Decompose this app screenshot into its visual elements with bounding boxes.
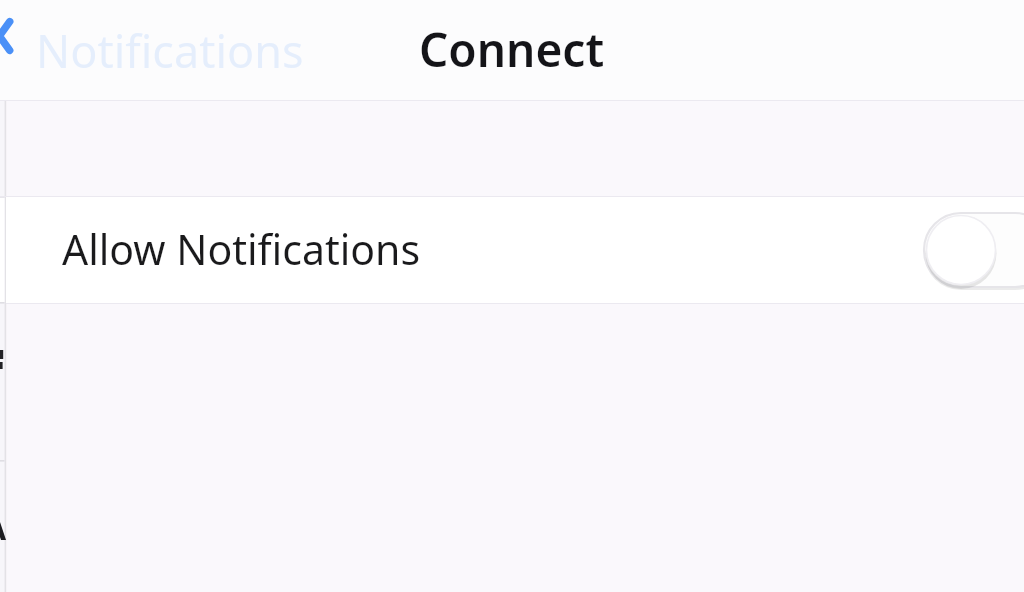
button[interactable]: Allow Notifications toggle <box>918 197 1024 303</box>
button[interactable]: Notifications <box>36 0 304 100</box>
button[interactable]: Allow Notifications <box>6 197 1024 303</box>
staticText: Notifications <box>36 20 304 81</box>
staticText: Connect <box>419 18 605 81</box>
button[interactable]: Back <box>0 12 26 60</box>
staticText: Allow Notifications <box>62 221 421 277</box>
